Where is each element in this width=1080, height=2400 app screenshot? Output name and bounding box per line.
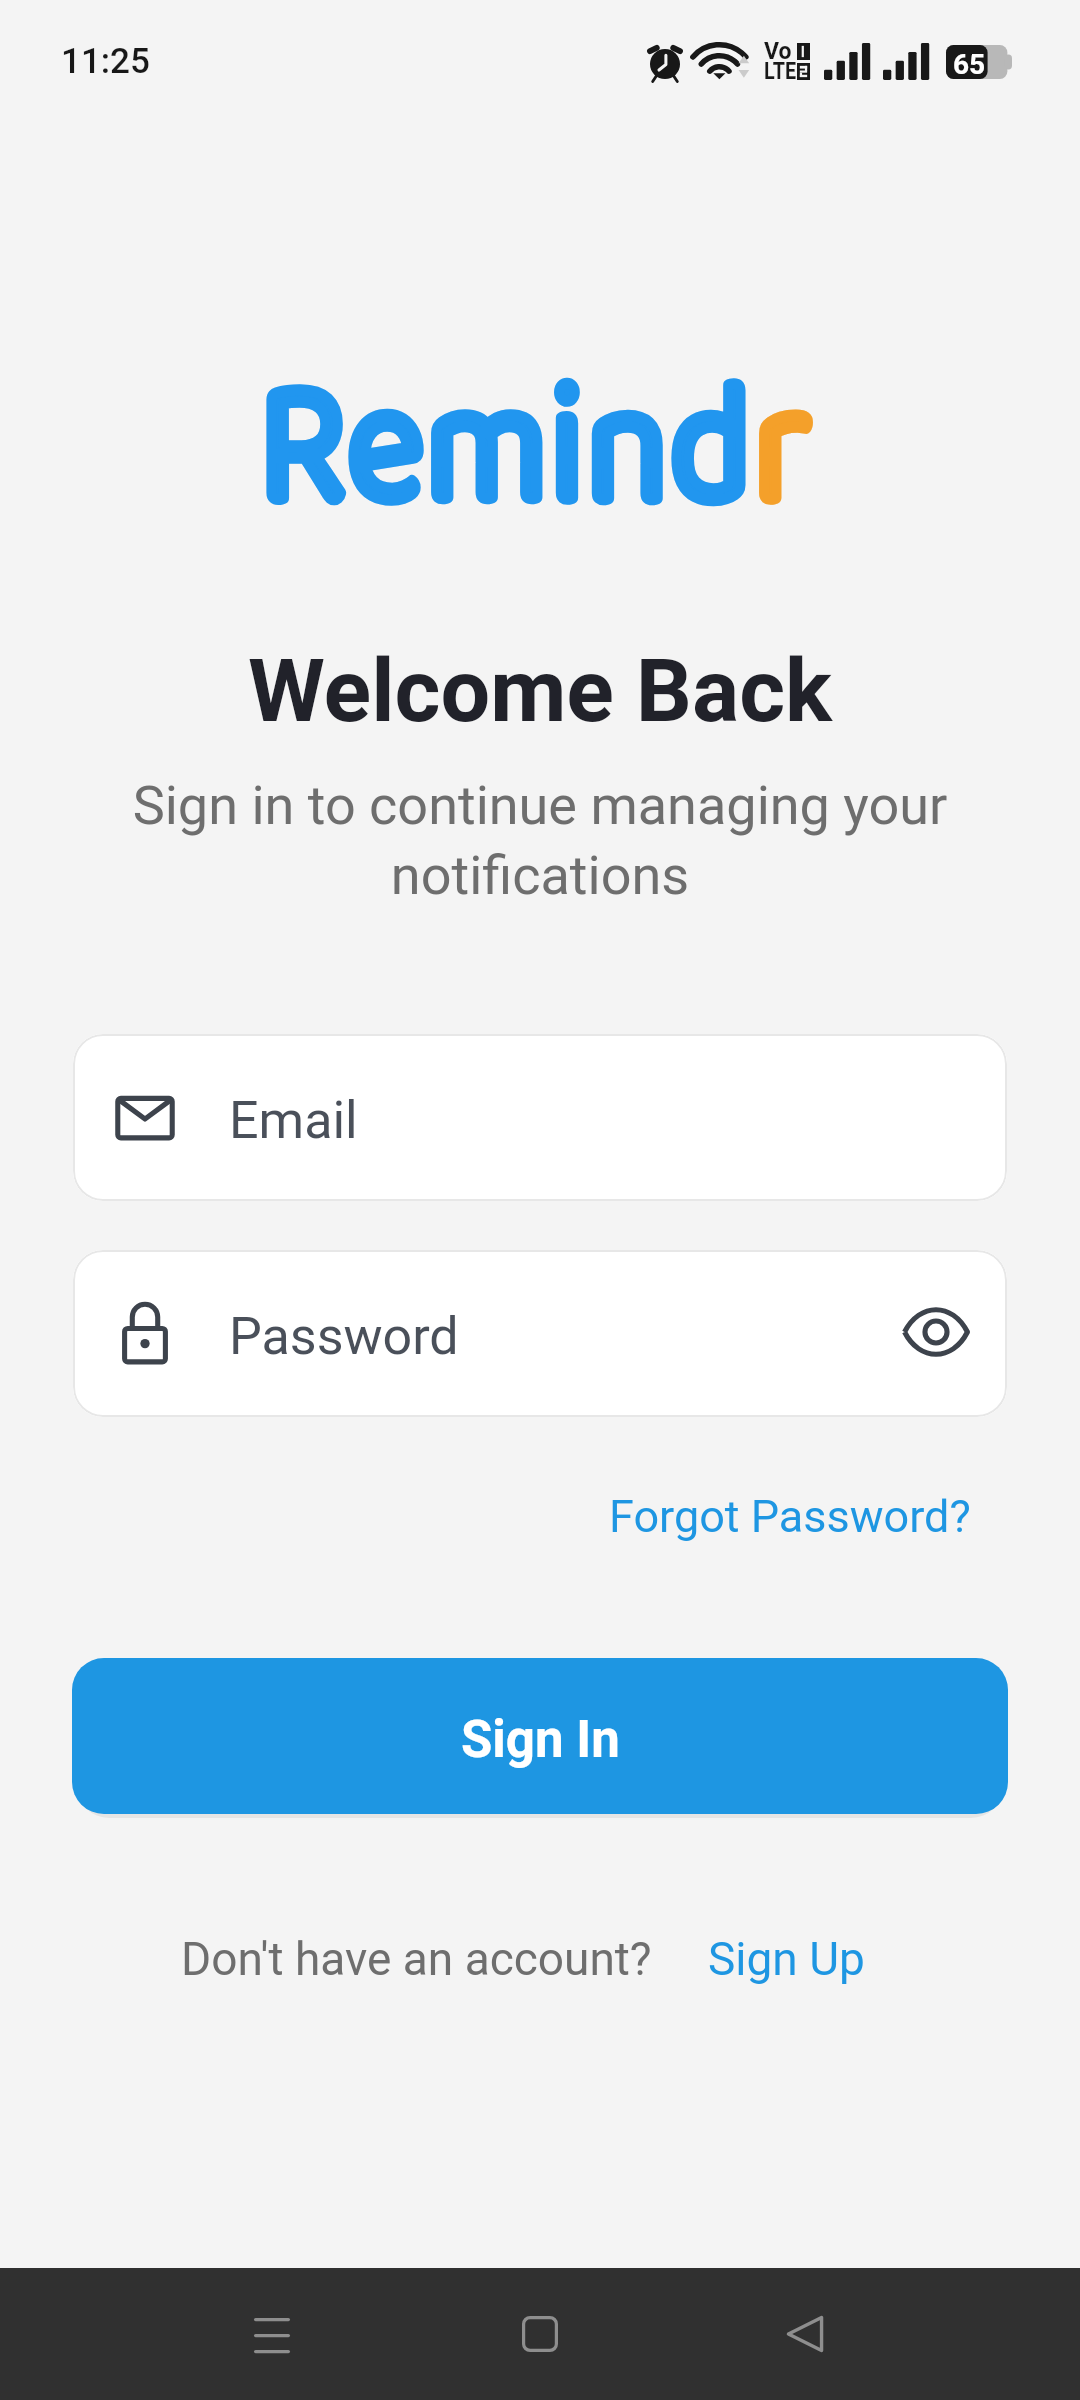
staticText: Email: [229, 1090, 358, 1151]
button[interactable]: Sign In: [72, 1658, 1008, 1814]
staticText: Vo: [764, 38, 792, 65]
staticText: Remind: [258, 309, 753, 589]
button[interactable]: Recent apps: [217, 2279, 327, 2389]
button[interactable]: Password: [73, 1250, 1007, 1417]
button[interactable]: Home: [485, 2279, 595, 2389]
staticText: Don't have an account?: [181, 1932, 652, 1986]
staticText: 11:25: [61, 41, 150, 82]
button[interactable]: Forgot Password?: [605, 1484, 975, 1549]
staticText: LTE: [764, 58, 797, 85]
staticText: 65: [953, 48, 986, 81]
staticText: Welcome Back: [0, 639, 1080, 742]
button[interactable]: Back: [750, 2279, 860, 2389]
staticText: Sign In: [461, 1710, 620, 1770]
staticText: Sign in to continue managing your notifi…: [100, 774, 980, 908]
staticText: Password: [229, 1306, 459, 1367]
staticText: Sign Up: [708, 1932, 865, 1986]
button[interactable]: Email: [73, 1034, 1007, 1201]
staticText: r: [753, 309, 811, 589]
button[interactable]: Sign Up: [708, 1932, 865, 1986]
button[interactable]: Show password: [889, 1285, 983, 1379]
staticText: Forgot Password?: [609, 1490, 971, 1543]
staticText: r: [753, 309, 811, 589]
staticText: Remind: [258, 309, 753, 589]
